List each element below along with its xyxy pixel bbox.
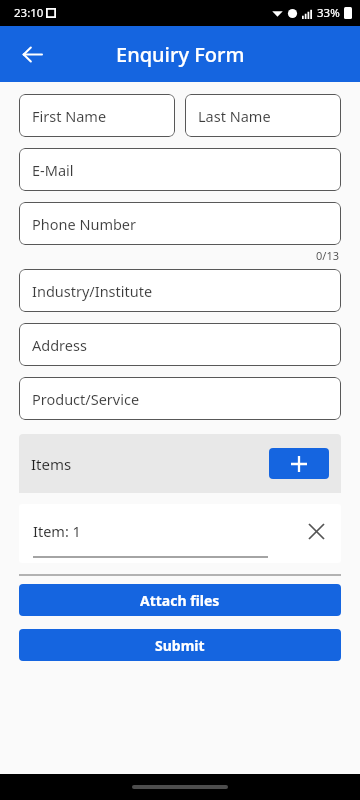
button[interactable]: Item: 1 (19, 504, 341, 563)
staticText: 0/13 (19, 248, 339, 263)
staticText: First Name (32, 106, 107, 126)
button[interactable]: Add item (269, 448, 329, 479)
staticText: Industry/Institute (32, 281, 153, 301)
staticText: Item: 1 (33, 521, 81, 541)
button[interactable]: Submit (19, 629, 341, 661)
staticText: Product/Service (32, 389, 140, 409)
staticText: Phone Number (32, 214, 137, 234)
staticText: 33% (317, 5, 340, 21)
staticText: Last Name (198, 106, 271, 126)
staticText: Attach files (140, 591, 220, 610)
button[interactable]: Last Name (185, 94, 341, 137)
staticText: Items (31, 454, 72, 474)
staticText: Enquiry Form (116, 41, 245, 68)
button[interactable]: Phone Number (19, 202, 341, 245)
staticText: E-Mail (32, 160, 74, 180)
button[interactable]: Address (19, 323, 341, 366)
button[interactable]: Industry/Institute (19, 269, 341, 312)
button[interactable]: Attach files (19, 584, 341, 616)
staticText: Address (32, 335, 87, 355)
button[interactable]: First Name (19, 94, 175, 137)
button[interactable]: Remove item (299, 514, 333, 548)
staticText: 23:10 (14, 5, 44, 21)
button[interactable]: Product/Service (19, 377, 341, 420)
button[interactable]: E-Mail (19, 148, 341, 191)
staticText: Submit (155, 636, 205, 655)
button[interactable]: Back (10, 32, 54, 76)
